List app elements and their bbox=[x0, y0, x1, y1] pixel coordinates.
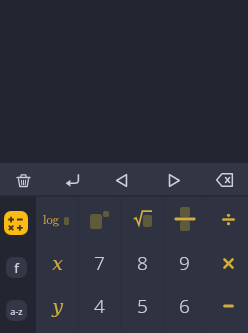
button[interactable]: 8 bbox=[121, 241, 163, 285]
staticText: x bbox=[52, 252, 63, 274]
button[interactable]: square root bbox=[121, 197, 163, 241]
button[interactable]: Enter bbox=[48, 163, 96, 197]
staticText: 5 bbox=[137, 293, 148, 319]
button[interactable]: divide bbox=[206, 197, 248, 241]
staticText: 4 bbox=[94, 293, 105, 319]
button[interactable]: 4 bbox=[78, 284, 120, 328]
staticText: 7 bbox=[94, 250, 105, 276]
staticText: log bbox=[43, 210, 59, 228]
button[interactable]: y bbox=[36, 284, 78, 328]
staticText: 8 bbox=[137, 250, 148, 276]
staticText: 6 bbox=[179, 293, 190, 319]
button[interactable]: 6 bbox=[163, 284, 205, 328]
staticText: a-z bbox=[10, 305, 23, 317]
button[interactable]: fraction bbox=[163, 197, 205, 241]
button[interactable]: Functions bbox=[0, 241, 36, 285]
button[interactable]: Clear bbox=[0, 163, 47, 197]
button[interactable]: 7 bbox=[78, 241, 120, 285]
button[interactable]: 5 bbox=[121, 284, 163, 328]
button[interactable]: multiply bbox=[206, 241, 248, 285]
button[interactable]: 9 bbox=[163, 241, 205, 285]
button[interactable]: Letters bbox=[0, 284, 36, 328]
button[interactable]: log bbox=[36, 197, 78, 241]
staticText: f bbox=[14, 259, 19, 277]
button[interactable]: minus bbox=[206, 284, 248, 328]
staticText: y bbox=[52, 295, 63, 317]
button[interactable]: Move right bbox=[150, 163, 198, 197]
button[interactable]: Backspace bbox=[200, 163, 248, 197]
button[interactable]: Operators bbox=[0, 197, 36, 241]
staticText: 9 bbox=[179, 250, 190, 276]
button[interactable]: x bbox=[36, 241, 78, 285]
button[interactable]: Move left bbox=[98, 163, 146, 197]
button[interactable]: power bbox=[78, 197, 120, 241]
